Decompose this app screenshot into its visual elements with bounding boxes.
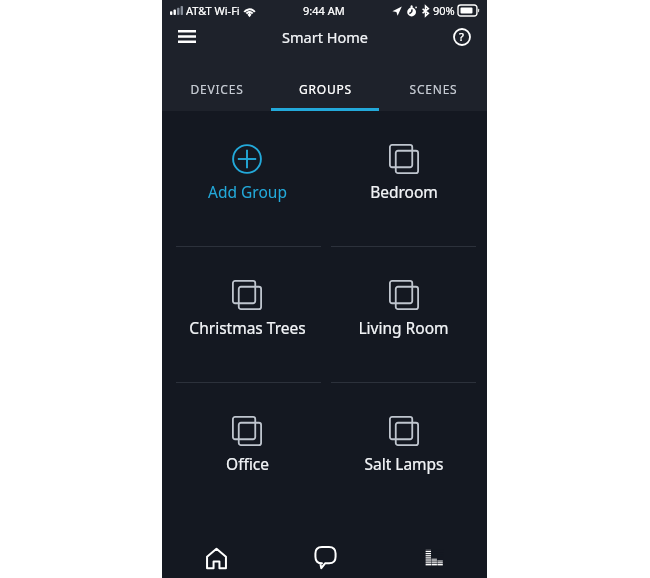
staticText: Office xyxy=(226,453,269,474)
button[interactable]: Christmas Trees xyxy=(169,247,325,382)
button[interactable]: Activity xyxy=(379,518,487,578)
button[interactable]: Bedroom xyxy=(325,111,482,246)
staticText: Smart Home xyxy=(282,27,368,47)
staticText: DEVICES xyxy=(190,81,244,97)
button[interactable]: Messages xyxy=(271,518,379,578)
button[interactable]: Salt Lamps xyxy=(325,383,482,518)
button[interactable]: Add Group xyxy=(169,111,325,246)
staticText: Bedroom xyxy=(370,181,438,202)
staticText: Christmas Trees xyxy=(189,317,306,338)
staticText: ? xyxy=(459,29,464,44)
staticText: SCENES xyxy=(409,81,458,97)
button[interactable]: Menu xyxy=(171,21,202,52)
staticText: Add Group xyxy=(208,181,287,202)
button[interactable]: GROUPS xyxy=(271,52,379,111)
button[interactable]: DEVICES xyxy=(162,52,271,111)
button[interactable]: Office xyxy=(169,383,325,518)
staticText: 90% xyxy=(433,3,455,18)
staticText: AT&T Wi-Fi xyxy=(186,3,240,18)
staticText: Living Room xyxy=(358,317,449,338)
staticText: Salt Lamps xyxy=(364,453,444,474)
button[interactable]: Living Room xyxy=(325,247,482,382)
button[interactable]: Home xyxy=(162,518,271,578)
staticText: 9:44 AM xyxy=(303,3,345,18)
button[interactable]: SCENES xyxy=(379,52,487,111)
button[interactable]: Help xyxy=(446,21,477,52)
staticText: GROUPS xyxy=(299,81,352,97)
